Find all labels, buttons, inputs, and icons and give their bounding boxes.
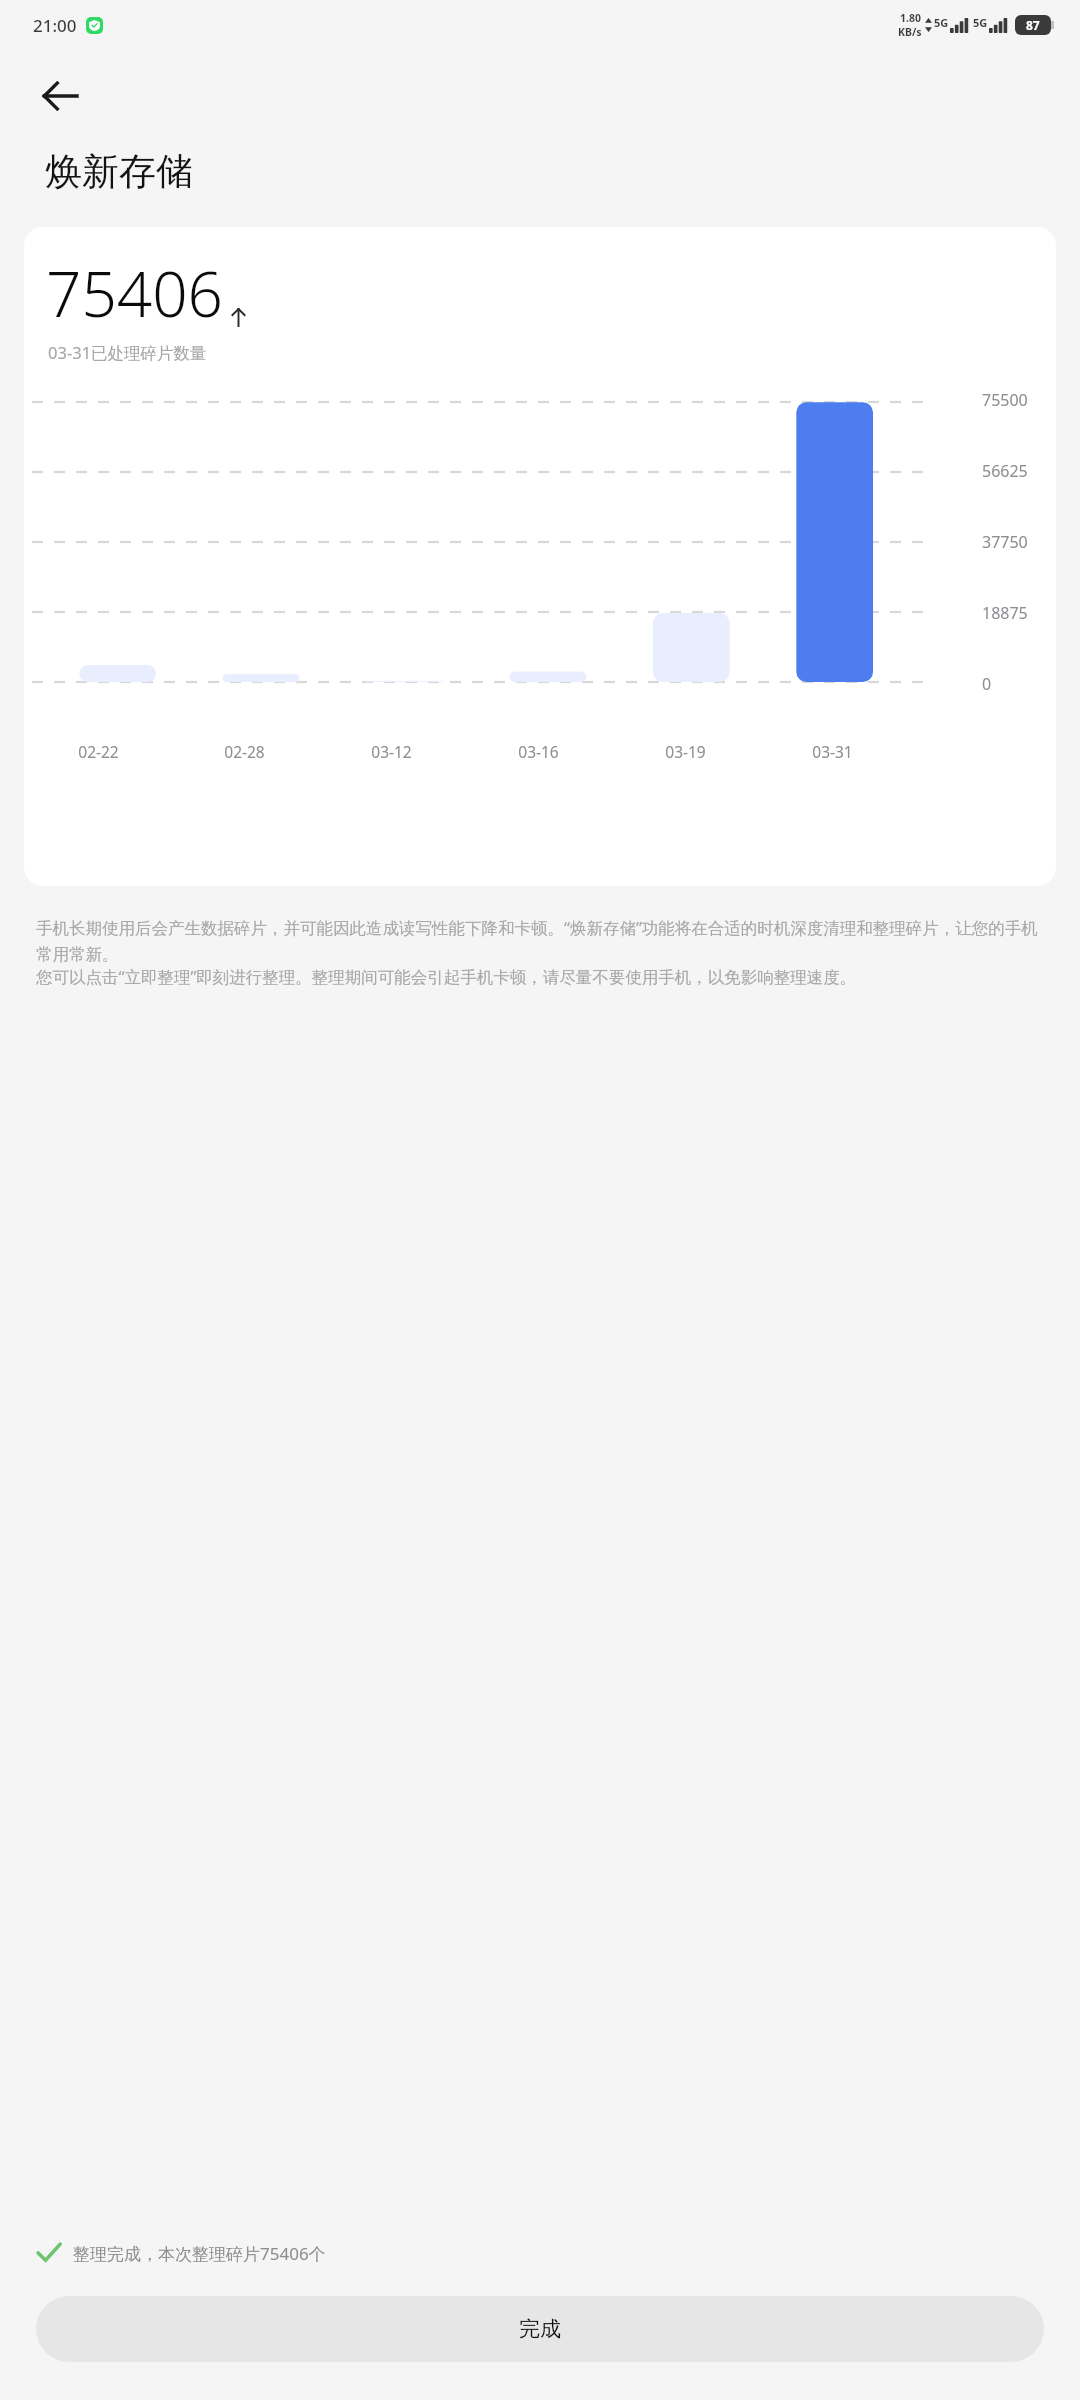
- staticText: 03-19: [665, 741, 706, 762]
- staticText: 03-16: [518, 741, 559, 762]
- staticText: 完成: [519, 2316, 561, 2342]
- staticText: 21:00: [33, 14, 77, 37]
- button[interactable]: 完成: [36, 2296, 1044, 2362]
- staticText: 75500: [982, 389, 1050, 411]
- staticText: 5G: [973, 15, 988, 30]
- staticText: 0: [982, 673, 1050, 695]
- staticText: 焕新存储: [45, 148, 193, 195]
- staticText: KB/s: [898, 25, 922, 39]
- staticText: 37750: [982, 531, 1050, 553]
- staticText: 03-31: [812, 741, 853, 762]
- staticText: 75406: [46, 251, 224, 335]
- staticText: 手机长期使用后会产生数据碎片，并可能因此造成读写性能下降和卡顿。“焕新存储”功能…: [36, 916, 1044, 965]
- staticText: 02-22: [78, 741, 119, 762]
- staticText: 56625: [982, 460, 1050, 482]
- button[interactable]: Back: [30, 66, 90, 126]
- staticText: 03-31已处理碎片数量: [48, 341, 207, 364]
- staticText: 1.80: [900, 11, 921, 25]
- staticText: 18875: [982, 602, 1050, 624]
- staticText: 您可以点击“立即整理”即刻进行整理。整理期间可能会引起手机卡顿，请尽量不要使用手…: [36, 965, 857, 988]
- staticText: 整理完成，本次整理碎片75406个: [73, 2242, 326, 2265]
- staticText: 02-28: [224, 741, 265, 762]
- staticText: 87: [1026, 17, 1040, 33]
- staticText: 5G: [934, 15, 949, 30]
- staticText: 03-12: [371, 741, 412, 762]
